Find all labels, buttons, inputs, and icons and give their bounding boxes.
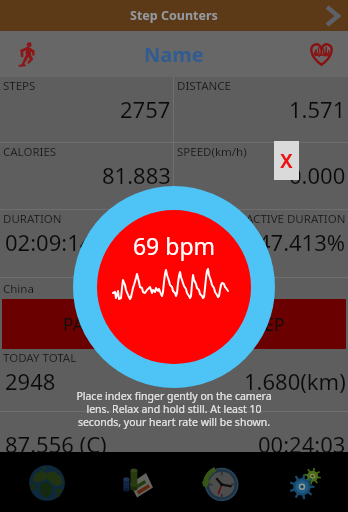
button[interactable]: PAUSE BACKGROUND STEP [2, 299, 346, 349]
staticText: 47.413% [258, 227, 346, 257]
staticText: China [3, 281, 34, 297]
button[interactable]: Settings [263, 452, 347, 512]
other: Heart rate [309, 42, 334, 66]
staticText: 1.680(km) [244, 366, 346, 396]
staticText: 81.883 [102, 160, 171, 190]
staticText: 87.556 (C) [5, 429, 107, 452]
staticText: 00:24:03 [258, 429, 346, 452]
button[interactable]: Statistics [95, 452, 179, 512]
staticText: SPEED(km/h) [177, 144, 247, 160]
staticText: PAUSE BACKGROUND STEP [63, 312, 285, 336]
staticText: CALORIES [3, 144, 57, 160]
staticText: 69 bpm [0, 230, 348, 261]
staticText: ACTIVE DURATION [246, 211, 346, 227]
button[interactable]: Step Counters [0, 0, 348, 31]
button[interactable]: Map [5, 452, 89, 512]
staticText: 2948 [5, 366, 56, 396]
button[interactable]: History [179, 452, 263, 512]
staticText: 0.000 [289, 160, 346, 190]
staticText: DISTANCE [177, 78, 231, 94]
staticText: 2757 [120, 94, 171, 124]
staticText: STEPS [3, 78, 36, 94]
staticText: Step Counters [130, 7, 218, 24]
staticText: 1.571 [289, 94, 346, 124]
staticText: DURATION [3, 211, 62, 227]
staticText: TODAY TOTAL [3, 350, 77, 366]
other: Next [325, 4, 340, 28]
button[interactable]: Close [274, 141, 299, 180]
staticText: Place index finger gently on the camera … [74, 389, 274, 429]
other: Activity [18, 42, 34, 67]
staticText: X [280, 148, 293, 174]
staticText: 02:09:14 [5, 227, 93, 257]
staticText: Name [144, 41, 204, 68]
